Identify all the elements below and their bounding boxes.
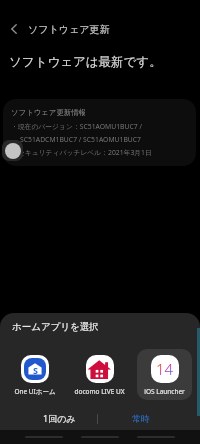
staticText: 1回のみ [43, 412, 76, 424]
button[interactable]: ソフトウェア更新情報 [3, 99, 196, 166]
button[interactable]: 常時 [100, 407, 182, 429]
staticText: 常時 [132, 413, 150, 424]
button[interactable]: docomo LIVE UX [72, 349, 127, 400]
staticText: ・セキュリティパッチレベル：2021年3月1日 [11, 148, 152, 157]
button[interactable]: S [8, 349, 62, 400]
staticText: ソフトウェア更新情報 [11, 108, 86, 117]
staticText: One UIホーム [14, 387, 56, 396]
staticText: ソフトウェアは最新です。 [9, 54, 162, 70]
staticText: docomo LIVE UX [74, 387, 125, 396]
button[interactable]: Recents [24, 433, 64, 441]
staticText: SC51ADCM1BUC7 / SC51AOMU1BUC7 [20, 135, 141, 144]
staticText: ホームアプリを選択 [12, 321, 99, 333]
staticText: ソフトウェア更新 [28, 23, 110, 36]
staticText: 14 [156, 359, 174, 379]
button[interactable]: 14 [137, 349, 192, 400]
button[interactable]: Home [80, 433, 120, 441]
staticText: iOS Launcher [144, 387, 185, 396]
staticText: S [33, 364, 38, 376]
staticText: ・現在のバージョン：SC51AOMU1BUC7 / [11, 122, 142, 131]
button[interactable]: 1回のみ [18, 407, 100, 429]
button[interactable]: Back [0, 20, 28, 38]
button[interactable]: Back [136, 433, 176, 441]
